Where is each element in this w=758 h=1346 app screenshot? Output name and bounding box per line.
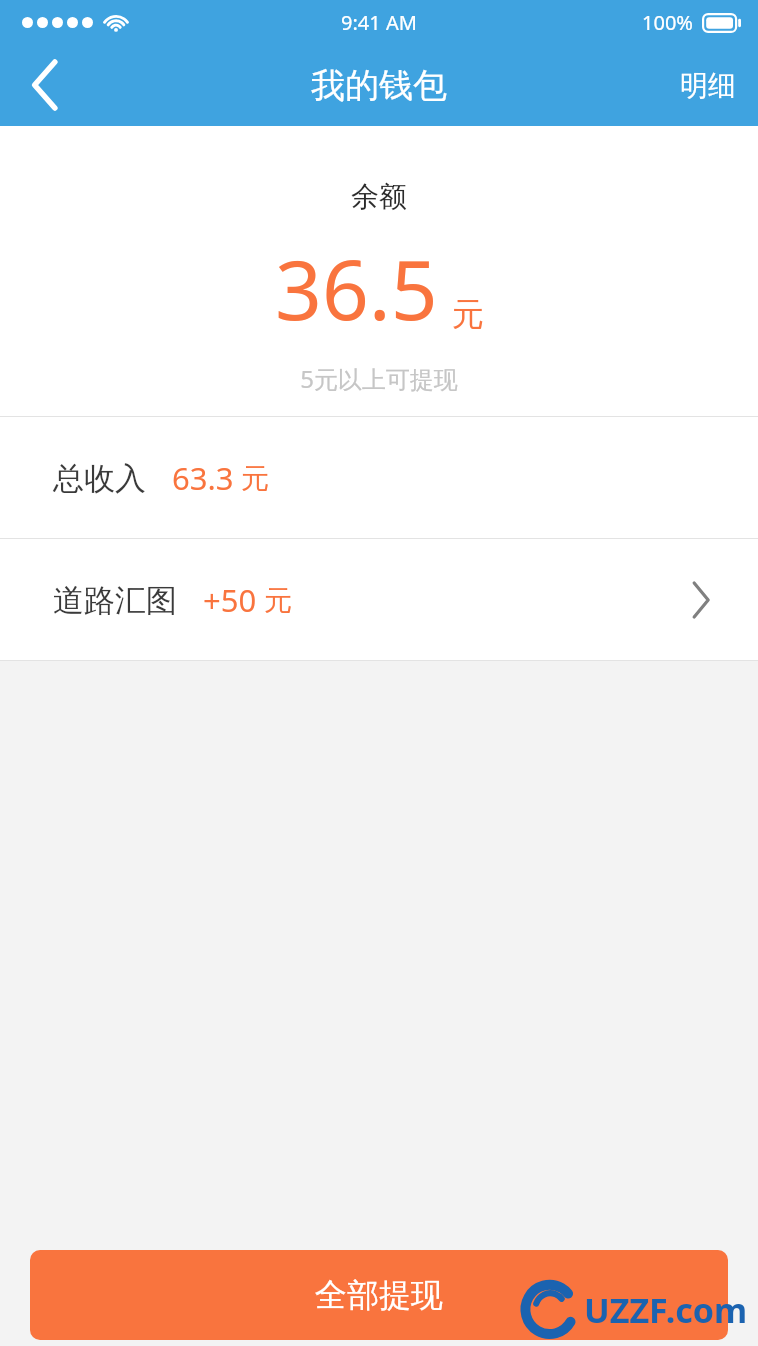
staticText: 36.5: [275, 232, 438, 344]
button[interactable]: 明细: [658, 44, 758, 126]
staticText: +50: [203, 579, 257, 621]
staticText: 余额: [351, 179, 407, 214]
staticText: 全部提现: [315, 1275, 443, 1315]
staticText: 元: [452, 294, 484, 334]
staticText: 我的钱包: [311, 64, 447, 107]
button[interactable]: 全部提现: [30, 1250, 728, 1340]
staticText: 63.3: [172, 457, 234, 499]
staticText: 明细: [680, 68, 736, 103]
other: Open details: [684, 583, 718, 617]
staticText: 100%: [642, 9, 693, 36]
staticText: 9:41 AM: [341, 9, 417, 36]
staticText: 5元以上可提现: [300, 362, 458, 395]
button[interactable]: 道路汇图: [0, 539, 758, 660]
staticText: 元: [264, 583, 292, 618]
button[interactable]: 总收入: [0, 417, 758, 538]
button[interactable]: Back: [0, 44, 90, 126]
staticText: 道路汇图: [53, 581, 177, 620]
staticText: 元: [241, 461, 269, 496]
staticText: 总收入: [53, 459, 146, 498]
staticText: UZZF.com: [584, 1287, 748, 1333]
